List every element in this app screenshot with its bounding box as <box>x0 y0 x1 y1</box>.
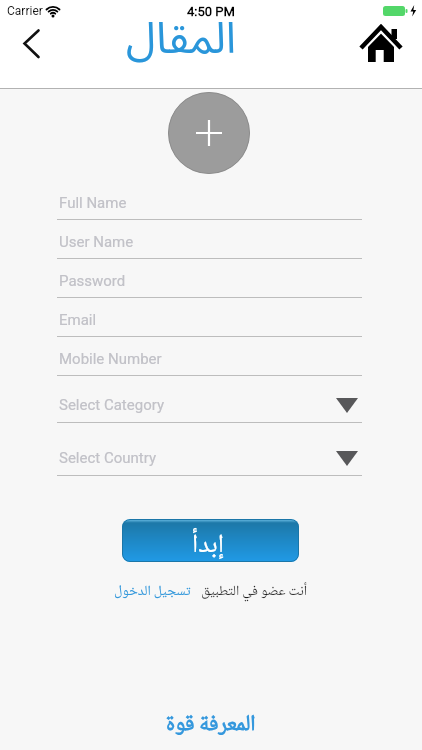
staticText: أنت عضو في التطبيق <box>201 580 308 604</box>
button[interactable]: User Name <box>57 226 362 258</box>
button[interactable]: Email <box>57 304 362 336</box>
button[interactable]: Select Country <box>57 441 362 475</box>
button[interactable]: Mobile Number <box>57 343 362 375</box>
staticText: Carrier <box>7 4 43 18</box>
staticText: Select Category <box>59 396 165 414</box>
button[interactable]: Full Name <box>57 187 362 219</box>
button[interactable] <box>168 92 250 174</box>
staticText: User Name <box>59 233 134 251</box>
staticText: 4:50 PM <box>187 4 235 19</box>
staticText: المعرفة قوة <box>166 706 256 742</box>
button[interactable] <box>356 20 406 66</box>
button[interactable] <box>12 24 52 68</box>
button[interactable]: تسجيل الدخول <box>114 580 191 604</box>
staticText: تسجيل الدخول <box>114 580 191 604</box>
staticText: Email <box>59 311 97 329</box>
button[interactable]: إبدأ <box>122 519 299 562</box>
staticText: Full Name <box>59 194 127 212</box>
staticText: Select Country <box>59 449 157 467</box>
staticText: Mobile Number <box>59 350 162 368</box>
button[interactable]: Password <box>57 265 362 297</box>
staticText: المقال <box>126 7 236 66</box>
staticText: إبدأ <box>192 524 224 562</box>
staticText: Password <box>59 272 126 290</box>
button[interactable]: Select Category <box>57 388 362 422</box>
